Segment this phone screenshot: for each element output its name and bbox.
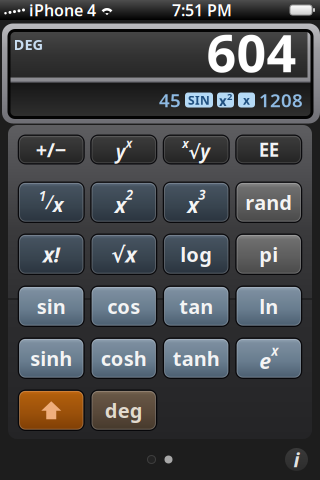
staticText: x — [53, 191, 64, 217]
button[interactable]: x — [163, 181, 230, 223]
staticText: cosh — [101, 345, 147, 372]
staticText: tanh — [173, 345, 220, 372]
staticText: 1208 — [259, 88, 303, 112]
button[interactable] — [18, 389, 85, 431]
button[interactable]: Info — [285, 448, 308, 471]
button[interactable]: deg — [90, 389, 157, 431]
staticText: e — [259, 346, 271, 375]
staticText: 7:51 PM — [172, 0, 232, 21]
button[interactable]: EE — [235, 134, 302, 164]
staticText: DEG — [13, 34, 43, 54]
staticText: ln — [259, 293, 278, 320]
staticText: sinh — [30, 345, 72, 372]
staticText: x — [271, 342, 278, 359]
staticText: x — [115, 190, 126, 219]
button[interactable]: x! — [18, 233, 85, 275]
staticText: sin — [37, 293, 66, 320]
staticText: iPhone 4 — [29, 0, 96, 21]
button[interactable]: ln — [235, 285, 302, 327]
staticText: x — [243, 92, 250, 108]
staticText: deg — [105, 397, 143, 424]
button[interactable]: x — [90, 181, 157, 223]
staticText: x — [187, 190, 198, 219]
staticText: √x — [111, 240, 136, 268]
button[interactable]: pi — [235, 233, 302, 275]
button[interactable]: tan — [163, 285, 230, 327]
staticText: i — [293, 446, 299, 473]
button[interactable]: cos — [90, 285, 157, 327]
staticText: cos — [107, 293, 140, 320]
staticText: log — [180, 241, 212, 268]
staticText: / — [46, 188, 53, 215]
button[interactable]: tanh — [163, 337, 230, 379]
button[interactable]: e — [235, 337, 302, 379]
button[interactable]: y — [90, 134, 157, 164]
button[interactable]: sinh — [18, 337, 85, 379]
staticText: 3 — [198, 186, 205, 203]
button[interactable]: 1 — [18, 181, 85, 223]
staticText: y — [116, 139, 126, 164]
button[interactable]: cosh — [90, 337, 157, 379]
staticText: x — [182, 135, 188, 151]
staticText: x — [126, 135, 132, 151]
staticText: √y — [188, 139, 210, 164]
staticText: x! — [43, 240, 60, 268]
button[interactable]: x — [163, 134, 230, 164]
staticText: EE — [259, 137, 279, 162]
staticText: tan — [179, 293, 213, 320]
button[interactable]: log — [163, 233, 230, 275]
staticText: +/− — [36, 136, 67, 163]
staticText: 2 — [227, 90, 232, 102]
button[interactable]: √x — [90, 233, 157, 275]
staticText: 1 — [39, 187, 46, 205]
button[interactable]: rand — [235, 181, 302, 223]
button[interactable]: sin — [18, 285, 85, 327]
staticText: 2 — [126, 186, 133, 203]
button[interactable]: +/− — [18, 134, 85, 164]
staticText: rand — [245, 189, 292, 216]
staticText: pi — [259, 241, 278, 268]
staticText: x — [219, 92, 227, 110]
staticText: SIN — [188, 92, 210, 108]
staticText: 604 — [206, 17, 296, 87]
staticText: 45 — [159, 88, 181, 112]
